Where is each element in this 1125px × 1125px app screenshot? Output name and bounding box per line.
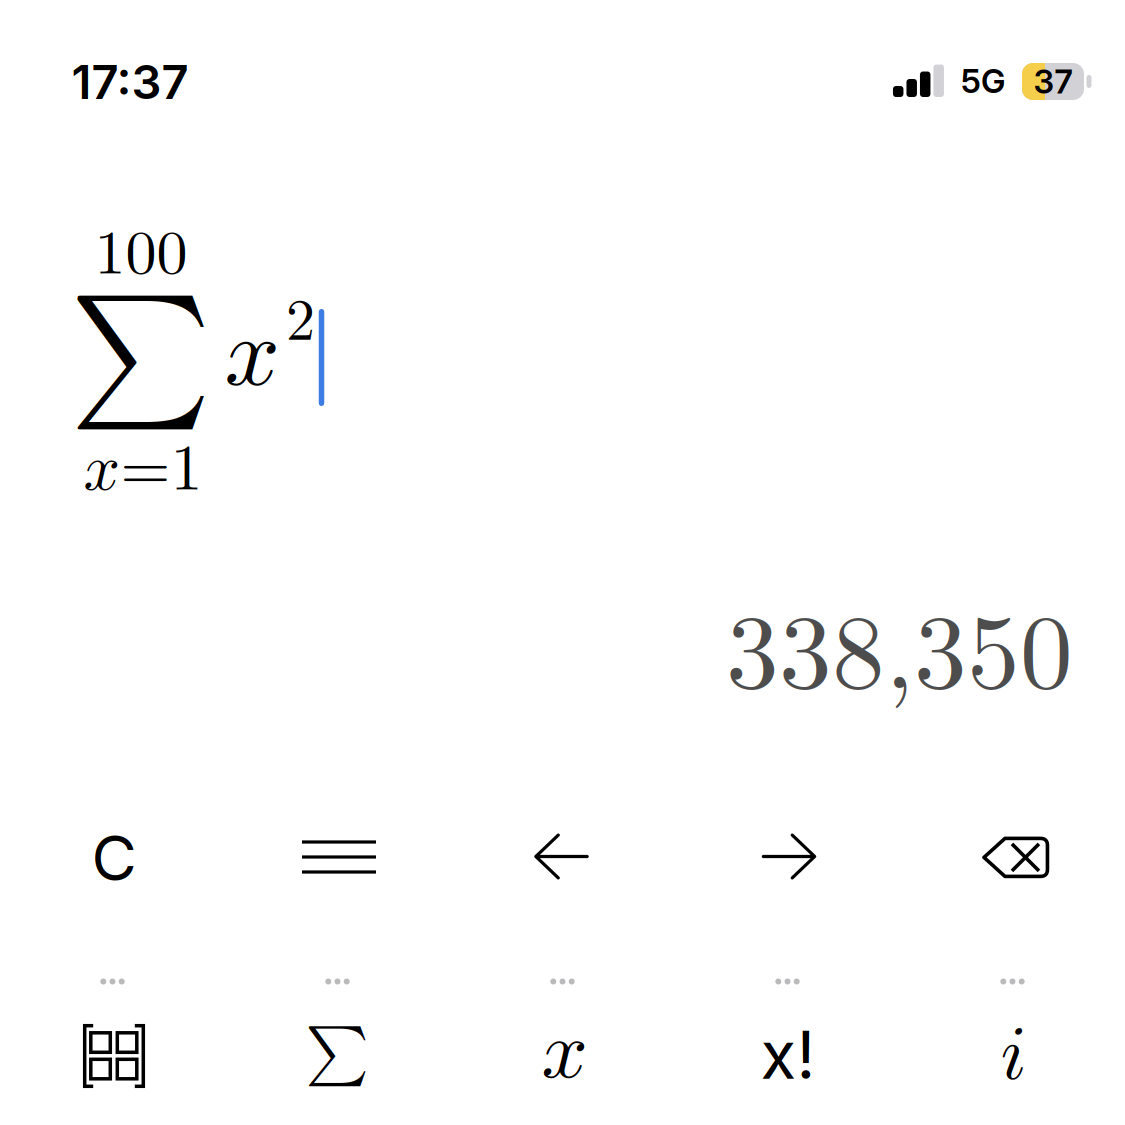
- staticText: ∑: [70, 288, 212, 422]
- staticText: 2: [286, 274, 315, 357]
- button[interactable]: Move cursor right: [699, 796, 879, 916]
- staticText: 100: [94, 204, 187, 291]
- staticText: 5G: [961, 61, 1005, 101]
- button[interactable]: Variable x: [474, 992, 654, 1112]
- button[interactable]: Sum: [247, 993, 427, 1113]
- staticText: 𝑥=1: [83, 438, 202, 502]
- staticText: 𝑥: [224, 306, 279, 403]
- staticText: 𝑖: [1000, 1017, 1026, 1093]
- button[interactable]: Move cursor left: [471, 796, 651, 916]
- staticText: 17:37: [71, 54, 188, 110]
- staticText: 37: [1033, 61, 1072, 101]
- button[interactable]: Factorial: [698, 995, 878, 1115]
- staticText: C: [91, 820, 136, 895]
- staticText: 𝑥: [541, 1012, 587, 1093]
- staticText: 338,350: [726, 569, 1073, 719]
- button[interactable]: Clear: [24, 798, 204, 918]
- button[interactable]: Menu: [249, 797, 429, 917]
- staticText: x!: [760, 1015, 815, 1094]
- button[interactable]: Imaginary unit: [923, 995, 1103, 1115]
- button[interactable]: Delete: [926, 797, 1106, 917]
- staticText: ∑: [305, 1023, 368, 1083]
- button[interactable]: Matrix: [24, 996, 204, 1116]
